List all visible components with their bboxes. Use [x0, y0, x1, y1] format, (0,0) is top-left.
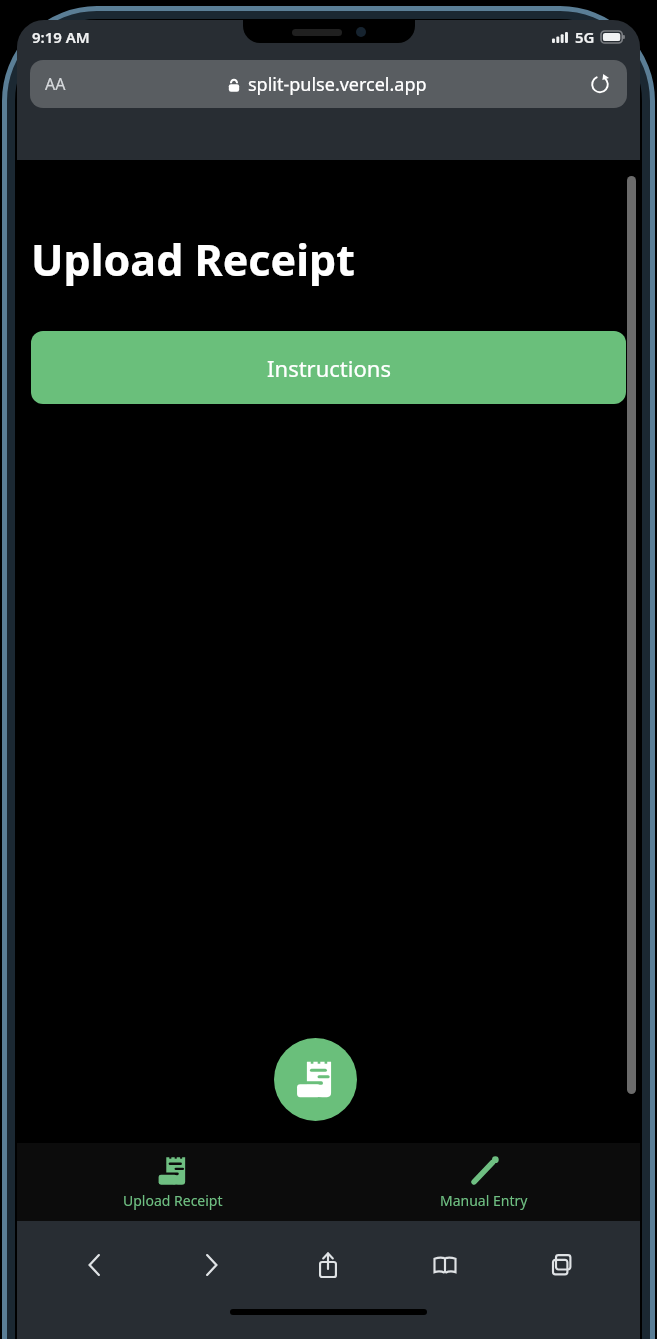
staticText: Instructions	[267, 353, 391, 383]
button[interactable]: Tabs	[503, 1221, 620, 1309]
button[interactable]: AA	[30, 60, 627, 108]
button[interactable]: Bookmarks	[386, 1221, 503, 1309]
staticText: 5G	[575, 27, 595, 47]
button[interactable]: Upload Receipt	[17, 1143, 328, 1221]
staticText: Upload Receipt	[123, 1191, 223, 1210]
button[interactable]: Instructions	[31, 331, 626, 404]
staticText: Upload Receipt	[31, 230, 355, 289]
staticText: split-pulse.vercel.app	[248, 72, 427, 97]
staticText: 9:19 AM	[32, 27, 90, 47]
button[interactable]: Reload page	[588, 72, 612, 96]
button[interactable]: Back	[37, 1221, 153, 1309]
button[interactable]: Manual Entry	[328, 1143, 640, 1221]
button[interactable]: Upload receipt	[274, 1038, 357, 1121]
button[interactable]: Share	[269, 1221, 386, 1309]
staticText: AA	[45, 73, 66, 95]
button[interactable]: Forward	[153, 1221, 269, 1309]
staticText: Manual Entry	[440, 1191, 528, 1210]
